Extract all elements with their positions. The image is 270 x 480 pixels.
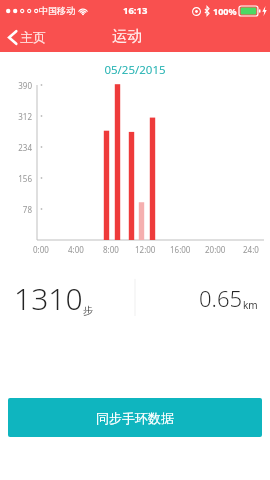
staticText: 0.65: [199, 283, 243, 313]
staticText: 390: [18, 80, 32, 91]
staticText: 234: [18, 142, 32, 153]
staticText: 156: [18, 173, 32, 184]
button[interactable]: 05/25/2015: [104, 62, 166, 78]
staticText: 312: [18, 111, 32, 122]
staticText: 同步手环数据: [96, 410, 174, 426]
staticText: 中国移动: [39, 5, 75, 16]
staticText: 运动: [112, 27, 142, 46]
staticText: 8:00: [103, 244, 119, 255]
staticText: 100%: [213, 5, 237, 17]
staticText: 78: [22, 204, 32, 215]
button[interactable]: 主页: [0, 25, 56, 49]
staticText: km: [243, 298, 258, 312]
staticText: 16:00: [170, 244, 191, 255]
staticText: 24:0: [243, 244, 259, 255]
staticText: 16:13: [123, 4, 148, 17]
staticText: 20:00: [205, 244, 226, 255]
staticText: 0:00: [33, 244, 49, 255]
staticText: 步: [83, 304, 93, 317]
staticText: 4:00: [68, 244, 84, 255]
button[interactable]: 同步手环数据: [8, 398, 262, 437]
staticText: 主页: [20, 29, 46, 45]
staticText: 12:00: [135, 244, 156, 255]
staticText: 1310: [14, 278, 83, 319]
